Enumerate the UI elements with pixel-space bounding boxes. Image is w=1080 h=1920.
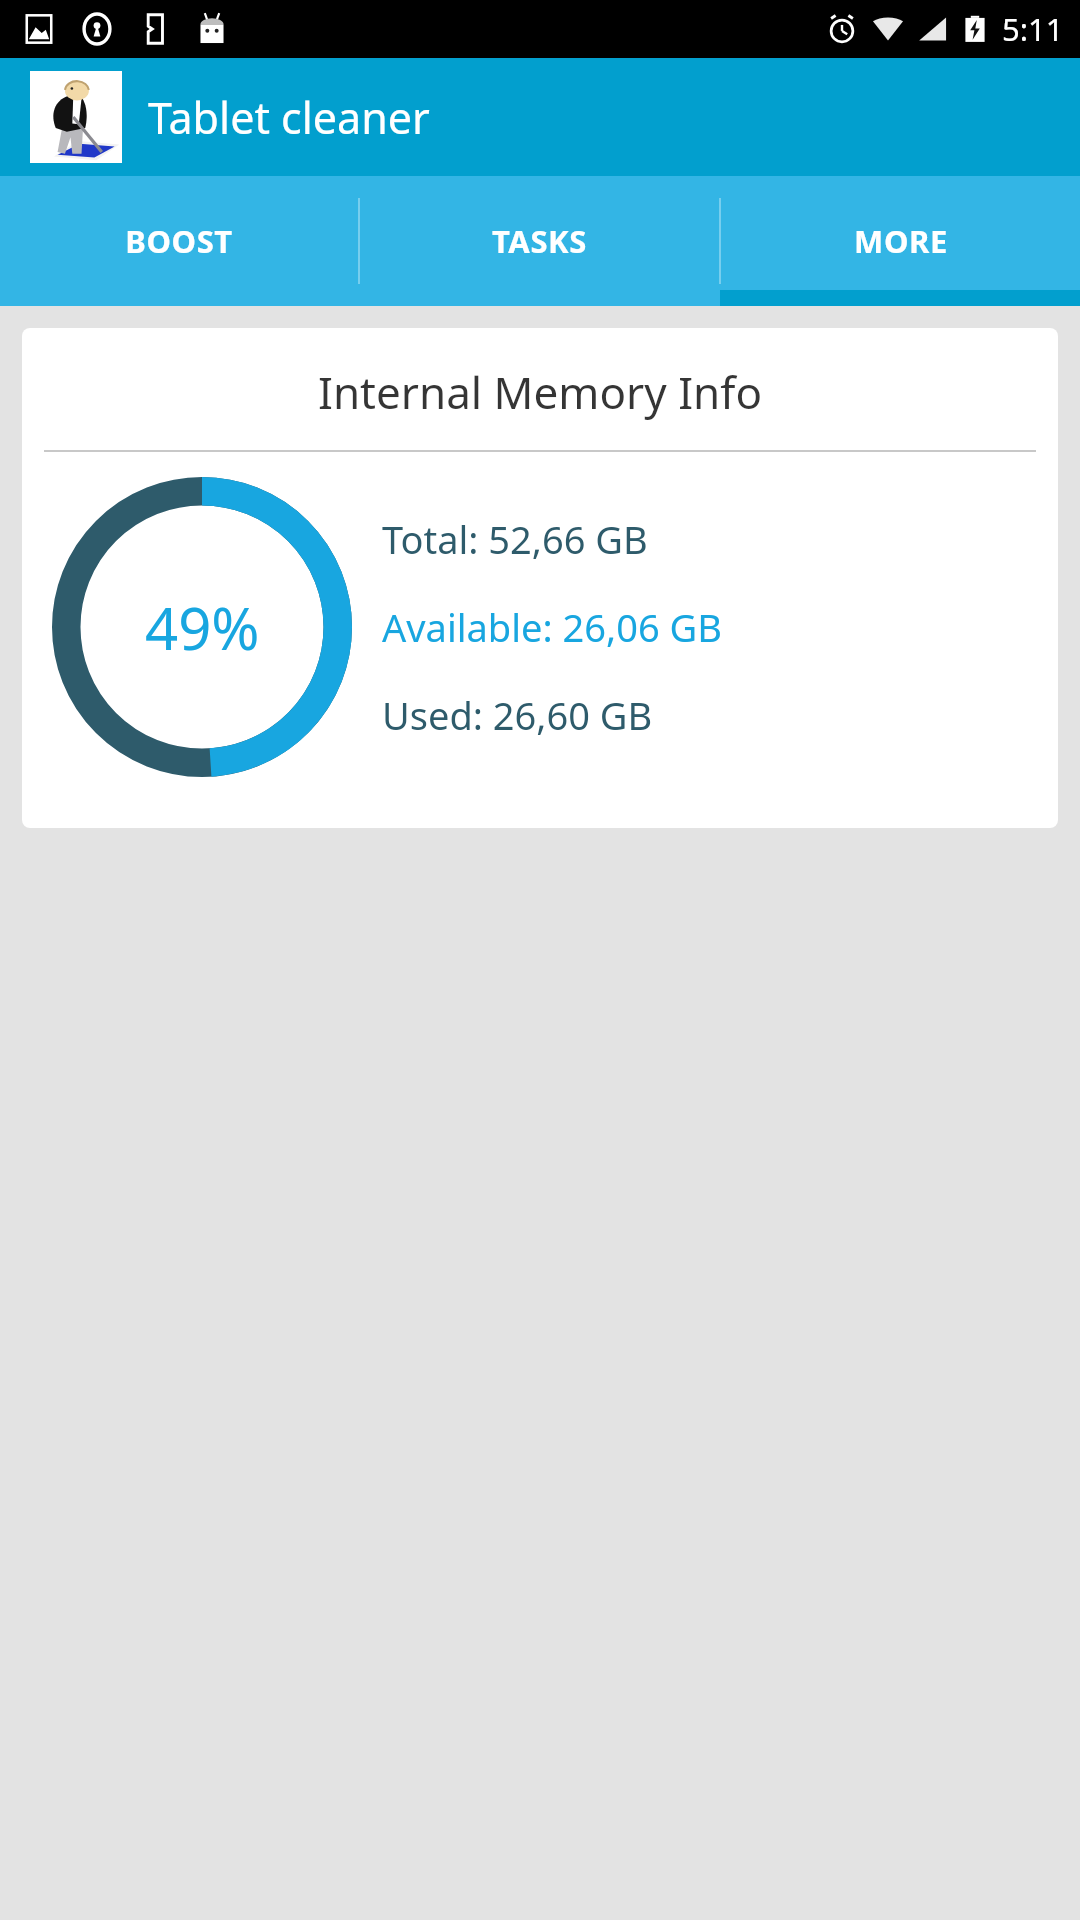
staticText: MORE <box>854 220 948 262</box>
button[interactable]: BOOST <box>0 176 358 306</box>
staticText: 49% <box>145 588 260 667</box>
button[interactable]: MORE <box>721 176 1080 306</box>
staticText: Tablet cleaner <box>148 88 430 147</box>
button[interactable]: Internal Memory Info <box>22 328 1058 828</box>
staticText: Available: 26,06 GB <box>382 601 722 653</box>
staticText: TASKS <box>492 220 587 262</box>
staticText: 5:11 <box>1002 8 1064 50</box>
button[interactable]: Tablet cleaner app icon <box>30 71 122 163</box>
staticText: Used: 26,60 GB <box>382 689 653 741</box>
button[interactable]: TASKS <box>360 176 719 306</box>
staticText: Internal Memory Info <box>22 362 1058 422</box>
staticText: Total: 52,66 GB <box>382 513 648 565</box>
staticText: BOOST <box>125 220 233 262</box>
